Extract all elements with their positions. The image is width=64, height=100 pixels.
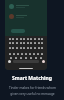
staticText: Smart Matching — [12, 75, 52, 82]
button[interactable]: Send — [42, 60, 45, 63]
button[interactable]: Voice input — [8, 60, 11, 63]
button[interactable]: Voice input — [5, 0, 47, 70]
staticText: Tinder makes for friends whom given very… — [9, 86, 56, 96]
